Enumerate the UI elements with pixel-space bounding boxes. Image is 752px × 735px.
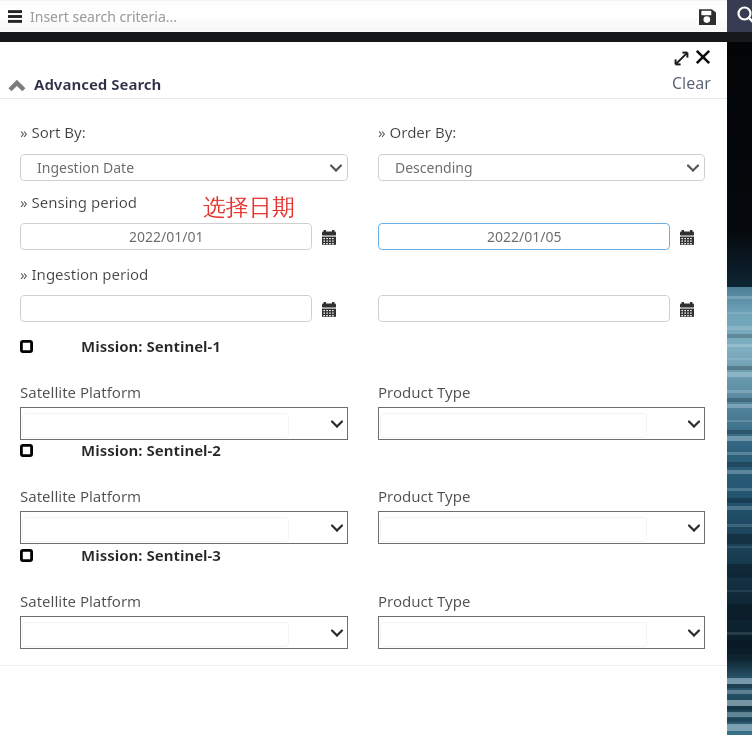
button[interactable] (20, 511, 348, 544)
button[interactable] (20, 616, 348, 649)
button[interactable]: Open calendar (677, 299, 697, 319)
button[interactable] (20, 407, 348, 440)
staticText: Advanced Search (34, 74, 162, 94)
staticText: Ingestion Date (37, 158, 135, 177)
button[interactable]: Toggle mission (20, 549, 33, 562)
staticText: Satellite Platform (20, 591, 142, 611)
staticText: » Order By: (378, 122, 457, 142)
staticText: » Sensing period (20, 192, 138, 212)
staticText: Mission: Sentinel-2 (81, 440, 221, 460)
staticText: Satellite Platform (20, 486, 142, 506)
staticText: 选择日期 (203, 193, 295, 222)
button[interactable]: Toggle mission (20, 340, 33, 353)
button[interactable]: Clear (672, 72, 711, 94)
button[interactable]: Menu (0, 0, 30, 32)
staticText: » Sort By: (20, 122, 86, 142)
button[interactable]: Close (691, 45, 715, 69)
button[interactable]: Advanced Search (8, 74, 162, 94)
button[interactable]: Insert search criteria... (30, 0, 687, 32)
staticText: Product Type (378, 591, 471, 611)
staticText: Clear (672, 72, 711, 94)
button[interactable] (378, 511, 705, 544)
staticText: Descending (395, 158, 473, 177)
staticText: 2022/01/05 (487, 227, 562, 246)
staticText: Mission: Sentinel-3 (81, 545, 221, 565)
button[interactable]: Search (727, 0, 752, 32)
staticText: 2022/01/01 (129, 227, 204, 246)
button[interactable]: 2022/01/01 (20, 223, 312, 250)
staticText: Mission: Sentinel-1 (81, 336, 221, 356)
button[interactable]: Expand (669, 46, 693, 70)
button[interactable]: Open calendar (319, 299, 339, 319)
staticText: Satellite Platform (20, 382, 142, 402)
staticText: Product Type (378, 486, 471, 506)
staticText: Insert search criteria... (30, 7, 178, 26)
button[interactable]: Save search (687, 0, 727, 32)
button[interactable] (378, 407, 705, 440)
button[interactable]: Mission: Sentinel-2 (81, 440, 221, 460)
button[interactable] (378, 295, 670, 322)
button[interactable]: Ingestion Date (20, 154, 348, 181)
button[interactable]: Mission: Sentinel-1 (81, 336, 221, 356)
staticText: Product Type (378, 382, 471, 402)
button[interactable] (378, 616, 705, 649)
button[interactable]: Open calendar (319, 227, 339, 247)
staticText: » Ingestion period (20, 264, 149, 284)
button[interactable]: Mission: Sentinel-3 (81, 545, 221, 565)
button[interactable]: 2022/01/05 (378, 223, 670, 250)
button[interactable] (20, 295, 312, 322)
button[interactable]: Descending (378, 154, 705, 181)
button[interactable]: Open calendar (677, 227, 697, 247)
button[interactable]: Toggle mission (20, 444, 33, 457)
